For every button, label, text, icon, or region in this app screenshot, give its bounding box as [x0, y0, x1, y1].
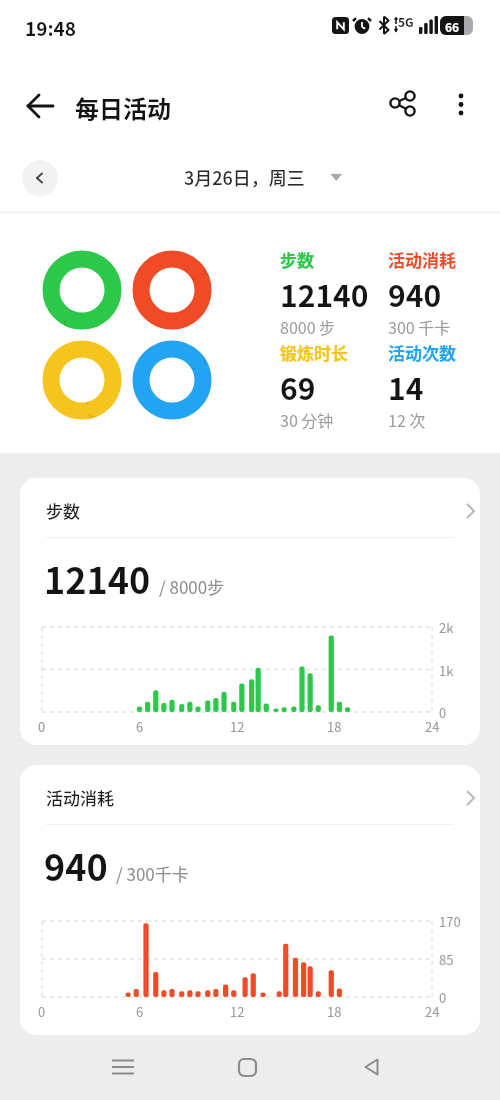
staticText: 1k: [439, 661, 454, 680]
staticText: 每日活动: [75, 90, 171, 125]
staticText: 12140: [44, 552, 151, 604]
staticText: 18: [327, 1002, 342, 1021]
button[interactable]: [346, 1043, 396, 1091]
staticText: 5G: [398, 13, 414, 30]
staticText: 66: [445, 18, 460, 35]
staticText: 12: [230, 717, 245, 736]
staticText: 940: [44, 839, 108, 891]
staticText: 300 千卡: [388, 315, 451, 338]
staticText: 24: [425, 1002, 440, 1021]
button[interactable]: [16, 88, 56, 124]
staticText: / 8000步: [159, 574, 225, 599]
button[interactable]: 步数: [20, 478, 480, 745]
staticText: 6: [136, 1002, 144, 1021]
staticText: 6: [136, 717, 144, 736]
button[interactable]: [382, 85, 420, 125]
staticText: 活动消耗: [46, 785, 114, 810]
staticText: 24: [425, 717, 440, 736]
staticText: 12 次: [388, 408, 426, 431]
button[interactable]: [98, 1043, 148, 1091]
staticText: 步数: [46, 498, 80, 523]
staticText: 69: [280, 365, 316, 408]
staticText: 0: [38, 1002, 46, 1021]
staticText: 0: [439, 703, 447, 722]
staticText: 活动次数: [388, 340, 456, 365]
button[interactable]: 3月26日，周三: [150, 153, 360, 205]
staticText: 0: [38, 717, 46, 736]
staticText: 170: [439, 912, 461, 931]
staticText: 85: [439, 950, 454, 969]
staticText: 940: [388, 272, 442, 315]
staticText: 锻炼时长: [280, 340, 348, 365]
staticText: 19:48: [25, 14, 77, 42]
staticText: 2k: [439, 618, 454, 637]
staticText: 30 分钟: [280, 408, 334, 431]
staticText: 14: [388, 365, 424, 408]
button[interactable]: [444, 83, 478, 127]
staticText: 步数: [280, 247, 314, 272]
staticText: 8000 步: [280, 315, 336, 338]
staticText: 12: [230, 1002, 245, 1021]
staticText: 活动消耗: [388, 247, 456, 272]
button[interactable]: [222, 1043, 272, 1091]
button[interactable]: [22, 160, 58, 196]
staticText: 0: [439, 988, 447, 1007]
button[interactable]: 活动消耗: [20, 765, 480, 1035]
staticText: 3月26日，周三: [184, 164, 305, 190]
staticText: 18: [327, 717, 342, 736]
staticText: / 300千卡: [116, 861, 189, 886]
staticText: 12140: [280, 272, 369, 315]
